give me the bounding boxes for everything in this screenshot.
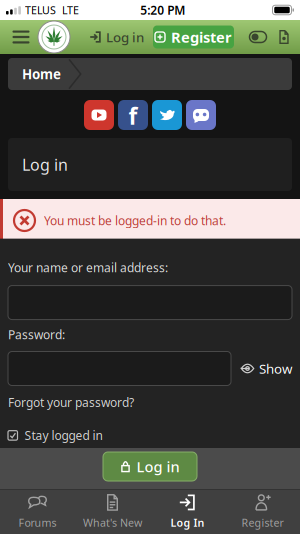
button[interactable]: Forums	[0, 489, 75, 534]
staticText: 5:20 PM	[140, 2, 185, 18]
staticText: What's New	[83, 515, 142, 530]
staticText: Log in	[136, 457, 179, 476]
button[interactable]: Log in	[90, 28, 144, 46]
staticText: Forums	[18, 515, 56, 530]
button[interactable]: Log In	[150, 489, 225, 534]
button[interactable]: Discord	[186, 100, 216, 130]
button[interactable]: Twitter	[152, 100, 182, 130]
button[interactable]: Bud Builders home	[36, 20, 72, 54]
staticText: Register	[241, 515, 283, 530]
button[interactable]: Menu	[6, 20, 36, 54]
staticText: Home	[22, 65, 61, 83]
button[interactable]: Register	[225, 489, 300, 534]
button[interactable]: Facebook	[118, 100, 148, 130]
staticText: f	[128, 101, 137, 131]
button[interactable]: Stay logged in	[8, 427, 102, 443]
button[interactable]: Forgot your password?	[8, 394, 134, 410]
button[interactable]: Toggle dark mode	[246, 20, 270, 54]
staticText: Log in	[106, 28, 144, 46]
staticText: Your name or email address:	[8, 260, 168, 275]
button[interactable]: Home	[8, 58, 61, 90]
button[interactable]: What's New	[75, 489, 150, 534]
staticText: Log In	[170, 515, 204, 530]
button[interactable]: Show	[231, 360, 300, 377]
staticText: Register	[171, 27, 232, 47]
staticText: TELUS LTE	[25, 3, 79, 17]
button[interactable]: YouTube	[84, 100, 114, 130]
staticText: Forgot your password?	[8, 394, 134, 410]
staticText: Log in	[22, 154, 68, 175]
staticText: You must be logged-in to do that.	[44, 212, 226, 228]
button[interactable]: Register	[153, 25, 234, 48]
staticText: Stay logged in	[24, 427, 102, 443]
staticText: Show	[259, 360, 292, 377]
button[interactable]: Log in	[103, 452, 197, 481]
staticText: Password:	[8, 327, 65, 342]
button[interactable]: Pages	[274, 20, 294, 54]
